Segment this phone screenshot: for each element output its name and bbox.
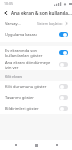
button[interactable]: Recents	[52, 140, 62, 150]
button[interactable]: Ana ekranı döndürmeye izin ver	[0, 59, 72, 70]
staticText: Kilit ekranı	[5, 74, 23, 79]
staticText: 10:05	[4, 1, 13, 6]
staticText: Varsayılan başlatıcı	[5, 21, 21, 26]
button[interactable]: Off	[59, 84, 68, 89]
button[interactable]: Off	[59, 62, 68, 67]
button[interactable]: Bildirimleri göster	[0, 103, 72, 114]
button[interactable]: Back	[11, 140, 21, 150]
button[interactable]: Ev ekranında son kullanılanları göster	[0, 46, 72, 59]
button[interactable]: Kilit durumunu göster	[0, 81, 72, 92]
staticText: Ana ekran & son kullanılanlar	[11, 10, 72, 16]
staticText: Ana ekranı döndürmeye izin ver	[5, 60, 56, 70]
button[interactable]: On	[59, 50, 68, 55]
button[interactable]: Tasarımı göster	[0, 92, 72, 103]
staticText: Uygulama kasası	[5, 32, 56, 37]
button[interactable]: Uygulama kasası	[0, 29, 72, 40]
staticText: Sistem başlatıcı	[37, 21, 63, 26]
staticText: Tasarımı göster	[5, 95, 56, 100]
button[interactable]: Varsayılan başlatıcı	[0, 18, 72, 29]
button[interactable]: Off	[59, 106, 68, 111]
button[interactable]: Back	[0, 7, 11, 18]
staticText: Kilit durumunu göster	[5, 84, 56, 89]
staticText: Ev ekranında son kullanılanları göster	[5, 48, 56, 58]
staticText: Bildirimleri göster	[5, 106, 56, 111]
button[interactable]: Home	[31, 140, 41, 150]
button[interactable]: On	[59, 32, 68, 37]
button[interactable]: Off	[59, 95, 68, 100]
